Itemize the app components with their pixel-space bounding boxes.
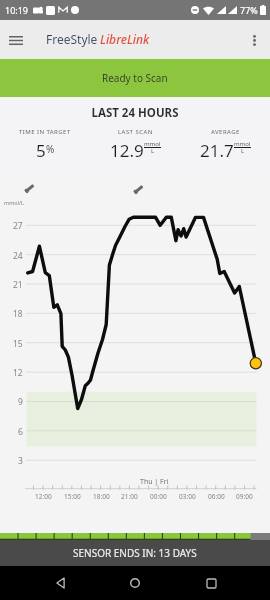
staticText: 6 <box>18 426 23 438</box>
staticText: 21.7 <box>200 139 234 162</box>
button[interactable]: More options <box>243 25 266 55</box>
button[interactable]: Recents <box>195 567 227 599</box>
staticText: 18 <box>13 308 23 320</box>
staticText: 15:00 <box>64 492 81 501</box>
button[interactable]: SENSOR ENDS IN: 13 DAYS <box>0 540 270 566</box>
staticText: 10:19 <box>5 4 29 16</box>
staticText: % <box>46 142 55 156</box>
staticText: LibreLink <box>100 31 150 47</box>
staticText: TIME IN TARGET <box>19 128 71 136</box>
staticText: 06:00 <box>208 492 225 501</box>
staticText: L <box>151 147 155 155</box>
staticText: 18:00 <box>93 492 110 501</box>
staticText: mmol <box>234 140 251 148</box>
staticText: L <box>241 147 245 155</box>
button[interactable]: Home <box>119 567 151 599</box>
staticText: Ready to Scan <box>102 71 168 85</box>
staticText: 77% <box>240 4 258 16</box>
staticText: mmol/L <box>4 199 24 206</box>
staticText: 24 <box>13 250 23 262</box>
staticText: FreeStyle <box>46 31 98 47</box>
button[interactable]: Ready to Scan <box>0 59 270 97</box>
staticText: 27 <box>13 220 23 232</box>
staticText: Thu | Fri <box>140 477 169 487</box>
staticText: 12:00 <box>35 492 52 501</box>
staticText: 21 <box>13 279 23 291</box>
staticText: 21:00 <box>121 492 138 501</box>
staticText: 12 <box>13 367 23 379</box>
staticText: LAST SCAN <box>118 128 153 136</box>
staticText: 3 <box>18 455 23 467</box>
staticText: 03:00 <box>179 492 196 501</box>
staticText: 09:00 <box>236 492 253 501</box>
staticText: 5 <box>36 139 46 162</box>
staticText: 9 <box>18 396 23 408</box>
staticText: SENSOR ENDS IN: 13 DAYS <box>73 546 197 560</box>
staticText: 12.9 <box>110 139 144 162</box>
button[interactable]: Back <box>44 567 76 599</box>
staticText: 00:00 <box>150 492 167 501</box>
staticText: LAST 24 HOURS <box>0 105 270 121</box>
staticText: AVERAGE <box>211 128 240 136</box>
button[interactable]: Menu <box>6 25 26 55</box>
staticText: 15 <box>13 338 23 350</box>
staticText: mmol <box>144 140 161 148</box>
